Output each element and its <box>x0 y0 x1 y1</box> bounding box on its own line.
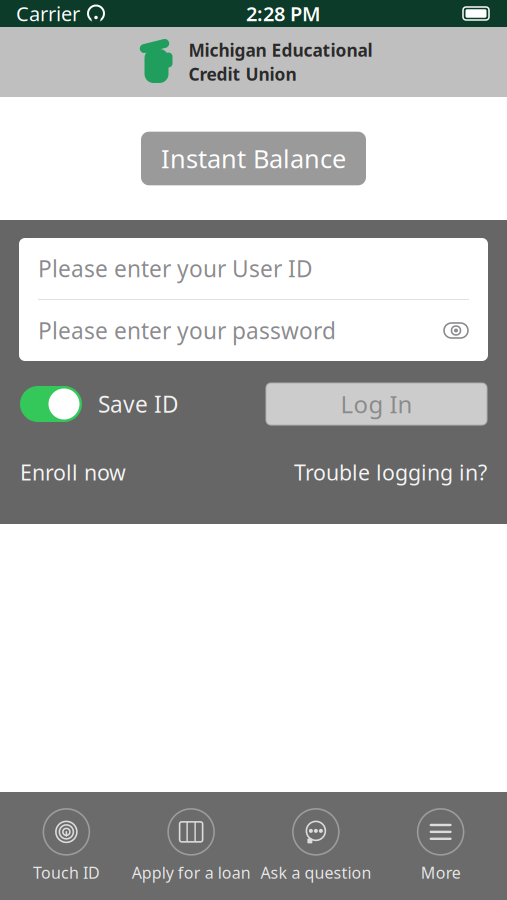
button[interactable]: Log In <box>266 383 487 425</box>
button[interactable]: Instant Balance <box>141 132 366 185</box>
button[interactable]: Save ID <box>20 386 179 422</box>
button[interactable]: Show password <box>435 320 469 340</box>
staticText: Trouble logging in? <box>294 458 487 486</box>
button[interactable]: Touch ID <box>4 803 129 889</box>
staticText: Please enter your password <box>38 315 336 345</box>
staticText: Please enter your User ID <box>38 253 313 283</box>
staticText: Carrier <box>16 0 80 27</box>
button[interactable]: Apply for a loan <box>129 803 254 889</box>
staticText: 2:28 PM <box>246 0 321 27</box>
button[interactable]: Enroll now <box>20 458 126 486</box>
staticText: Enroll now <box>20 458 126 486</box>
staticText: Ask a question <box>260 862 371 883</box>
staticText: Credit Union <box>188 62 296 85</box>
button[interactable]: Ask a question <box>253 803 378 889</box>
staticText: Save ID <box>98 389 179 419</box>
staticText: Michigan Educational <box>188 38 372 61</box>
button[interactable]: Trouble logging in? <box>294 458 487 486</box>
button[interactable]: More <box>378 803 503 889</box>
staticText: Apply for a loan <box>132 862 251 883</box>
staticText: Instant Balance <box>161 142 346 175</box>
staticText: Touch ID <box>33 862 100 883</box>
staticText: Log In <box>340 388 412 420</box>
staticText: More <box>421 862 461 883</box>
